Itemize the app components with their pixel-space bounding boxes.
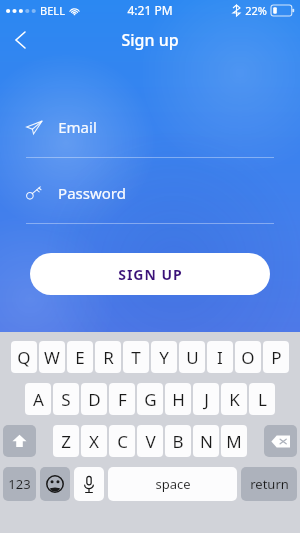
staticText: C [117, 430, 128, 453]
button[interactable]: return [241, 467, 297, 501]
staticText: M [226, 430, 242, 453]
staticText: R [103, 346, 114, 369]
button[interactable]: O [235, 341, 261, 373]
button[interactable]: Backspace [264, 425, 297, 457]
staticText: X [89, 430, 99, 453]
staticText: BELL [40, 3, 65, 18]
button[interactable]: I [207, 341, 233, 373]
button[interactable]: W [39, 341, 65, 373]
staticText: G [144, 388, 157, 411]
button[interactable]: T [123, 341, 149, 373]
button[interactable]: Z [53, 425, 79, 457]
staticText: N [200, 430, 213, 453]
button[interactable]: space [108, 467, 237, 501]
staticText: B [172, 430, 184, 453]
button[interactable]: SIGN UP [30, 253, 270, 295]
button[interactable]: B [165, 425, 191, 457]
staticText: Sign up [121, 29, 179, 51]
button[interactable]: U [179, 341, 205, 373]
button[interactable]: Back [0, 20, 40, 60]
staticText: 4:21 PM [127, 2, 173, 18]
button[interactable]: Email [26, 114, 274, 158]
button[interactable]: A [25, 383, 51, 415]
staticText: SIGN UP [118, 265, 183, 284]
staticText: I [217, 346, 223, 369]
staticText: H [172, 388, 185, 411]
staticText: 123 [8, 475, 31, 493]
button[interactable]: Password [26, 180, 274, 224]
staticText: F [118, 388, 127, 411]
staticText: U [186, 346, 199, 369]
button[interactable]: S [53, 383, 79, 415]
button[interactable]: M [221, 425, 247, 457]
button[interactable]: E [67, 341, 93, 373]
button[interactable]: D [81, 383, 107, 415]
staticText: Email [58, 117, 97, 137]
staticText: K [229, 388, 240, 411]
staticText: L [258, 388, 267, 411]
staticText: J [204, 388, 209, 411]
staticText: V [145, 430, 156, 453]
button[interactable]: Shift [3, 425, 36, 457]
staticText: O [241, 346, 255, 369]
staticText: D [88, 388, 101, 411]
button[interactable]: Y [151, 341, 177, 373]
button[interactable]: P [263, 341, 289, 373]
staticText: Q [17, 346, 31, 369]
button[interactable]: 123 [3, 467, 36, 501]
staticText: W [44, 346, 60, 369]
button[interactable]: F [109, 383, 135, 415]
staticText: T [131, 346, 141, 369]
staticText: space [155, 475, 191, 493]
staticText: 22% [245, 3, 267, 18]
button[interactable]: L [249, 383, 275, 415]
button[interactable]: C [109, 425, 135, 457]
button[interactable]: Emoji [40, 467, 70, 501]
staticText: Y [159, 346, 169, 369]
button[interactable]: Dictation [74, 467, 104, 501]
button[interactable]: Q [11, 341, 37, 373]
staticText: return [250, 475, 289, 493]
button[interactable]: H [165, 383, 191, 415]
button[interactable]: N [193, 425, 219, 457]
staticText: S [61, 388, 71, 411]
staticText: P [271, 346, 282, 369]
button[interactable]: G [137, 383, 163, 415]
button[interactable]: V [137, 425, 163, 457]
staticText: E [75, 346, 85, 369]
button[interactable]: J [193, 383, 219, 415]
button[interactable]: R [95, 341, 121, 373]
staticText: Password [58, 183, 126, 203]
button[interactable]: X [81, 425, 107, 457]
staticText: Z [61, 430, 71, 453]
button[interactable]: K [221, 383, 247, 415]
staticText: A [33, 388, 44, 411]
